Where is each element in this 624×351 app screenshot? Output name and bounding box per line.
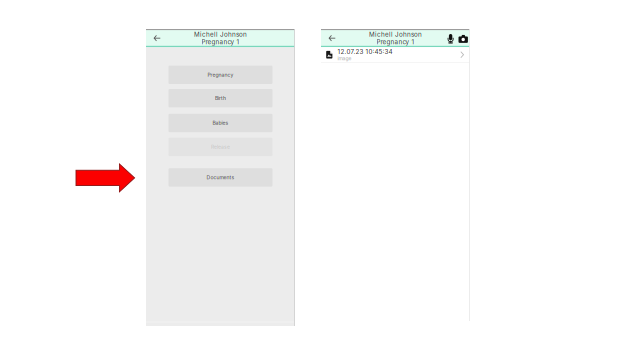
button[interactable]: 12.07.23 10:45:34 <box>321 47 470 62</box>
button[interactable]: Take a photo <box>456 29 470 47</box>
staticText: Babies <box>212 120 228 126</box>
staticText: Pregnancy 1 <box>376 38 414 46</box>
button[interactable]: Record audio <box>445 29 456 47</box>
staticText: 12.07.23 10:45:34 <box>337 48 392 55</box>
button[interactable]: Babies <box>168 114 272 132</box>
button[interactable]: Pregnancy <box>168 66 272 84</box>
staticText: Release <box>211 144 230 150</box>
staticText: Pregnancy 1 <box>201 38 239 46</box>
staticText: image <box>337 55 351 61</box>
staticText: Documents <box>206 174 234 180</box>
button[interactable]: Back <box>149 29 165 47</box>
staticText: Michell Johnson <box>194 31 247 38</box>
staticText: Pregnancy <box>207 72 233 78</box>
button[interactable]: Back <box>324 29 340 47</box>
staticText: Birth <box>215 95 226 101</box>
button[interactable]: Birth <box>168 89 272 107</box>
button[interactable]: Documents <box>168 168 272 187</box>
staticText: Michell Johnson <box>369 31 422 38</box>
